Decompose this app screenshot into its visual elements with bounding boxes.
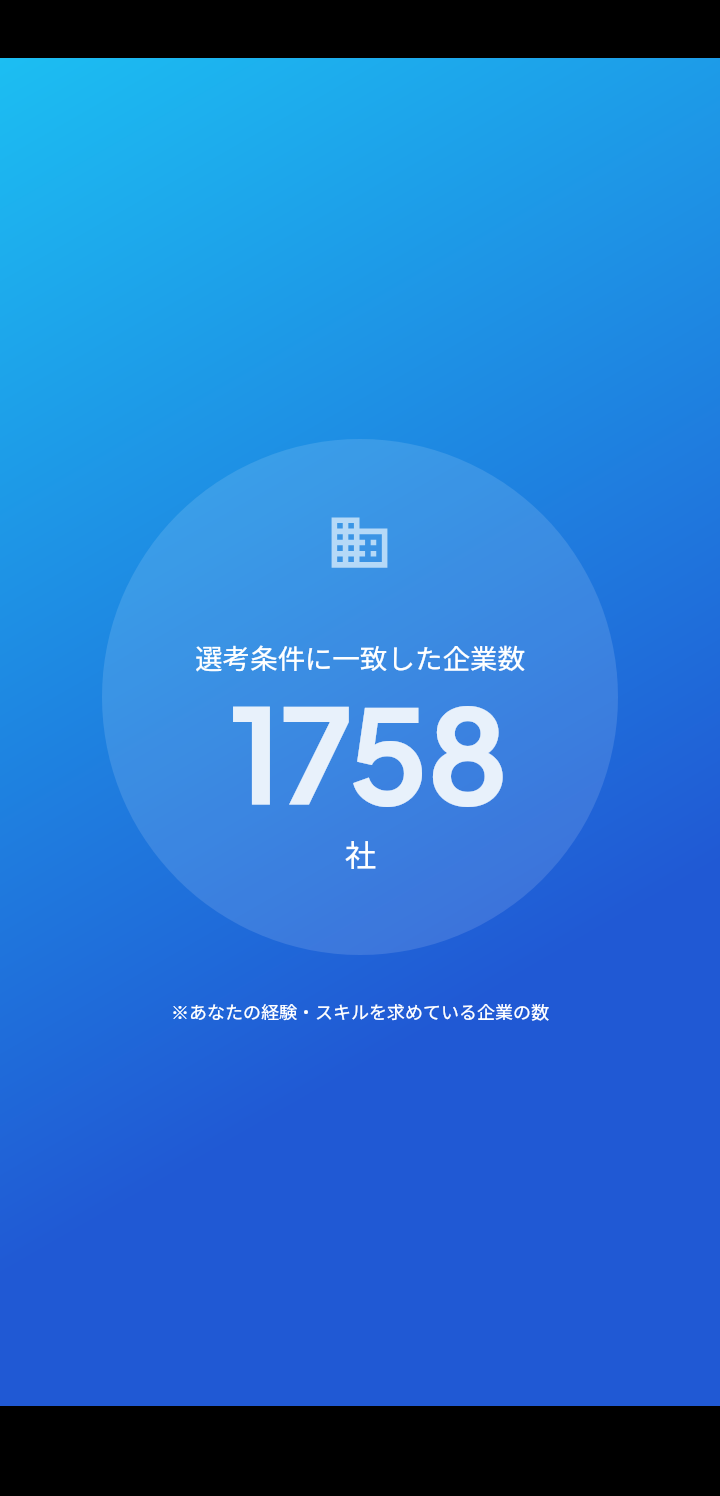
staticText: 選考条件に一致した企業数 [195,637,525,677]
other: Matching companies [326,509,393,576]
staticText: ※あなたの経験・スキルを求めている企業の数 [171,998,549,1024]
button[interactable] [102,439,618,955]
staticText: 1758 [229,669,507,835]
staticText: 社 [345,831,376,876]
